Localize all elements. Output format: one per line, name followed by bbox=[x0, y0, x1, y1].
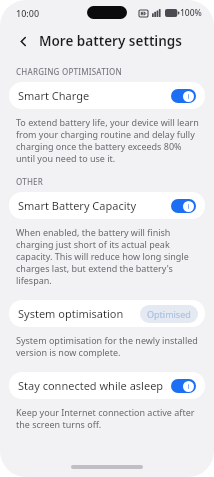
staticText: When enabled, the battery will finish ch… bbox=[16, 226, 200, 286]
staticText: Stay connected while asleep bbox=[18, 378, 165, 393]
button[interactable]: Toggle bbox=[171, 199, 196, 213]
staticText: CHARGING OPTIMISATION bbox=[16, 66, 122, 77]
staticText: System optimisation bbox=[18, 306, 135, 321]
staticText: Smart Battery Capacity bbox=[18, 198, 165, 213]
button[interactable]: Toggle bbox=[171, 89, 196, 103]
button[interactable]: Toggle bbox=[171, 379, 196, 393]
staticText: To extend battery life, your device will… bbox=[16, 116, 200, 164]
button[interactable]: Smart Charge bbox=[9, 82, 205, 109]
staticText: 100% bbox=[180, 7, 202, 19]
button[interactable]: Smart Battery Capacity bbox=[9, 192, 205, 219]
staticText: More battery settings bbox=[39, 32, 182, 50]
staticText: OTHER bbox=[16, 176, 44, 187]
button[interactable]: Stay connected while asleep bbox=[9, 372, 205, 399]
button[interactable]: System optimisation bbox=[9, 300, 205, 327]
staticText: Optimised bbox=[147, 308, 191, 320]
button[interactable]: Back bbox=[13, 31, 33, 51]
staticText: 10:00 bbox=[16, 7, 40, 19]
staticText: Keep your Internet connection active aft… bbox=[16, 406, 200, 430]
staticText: System optimisation for the newly instal… bbox=[16, 334, 200, 358]
staticText: Smart Charge bbox=[18, 88, 165, 103]
